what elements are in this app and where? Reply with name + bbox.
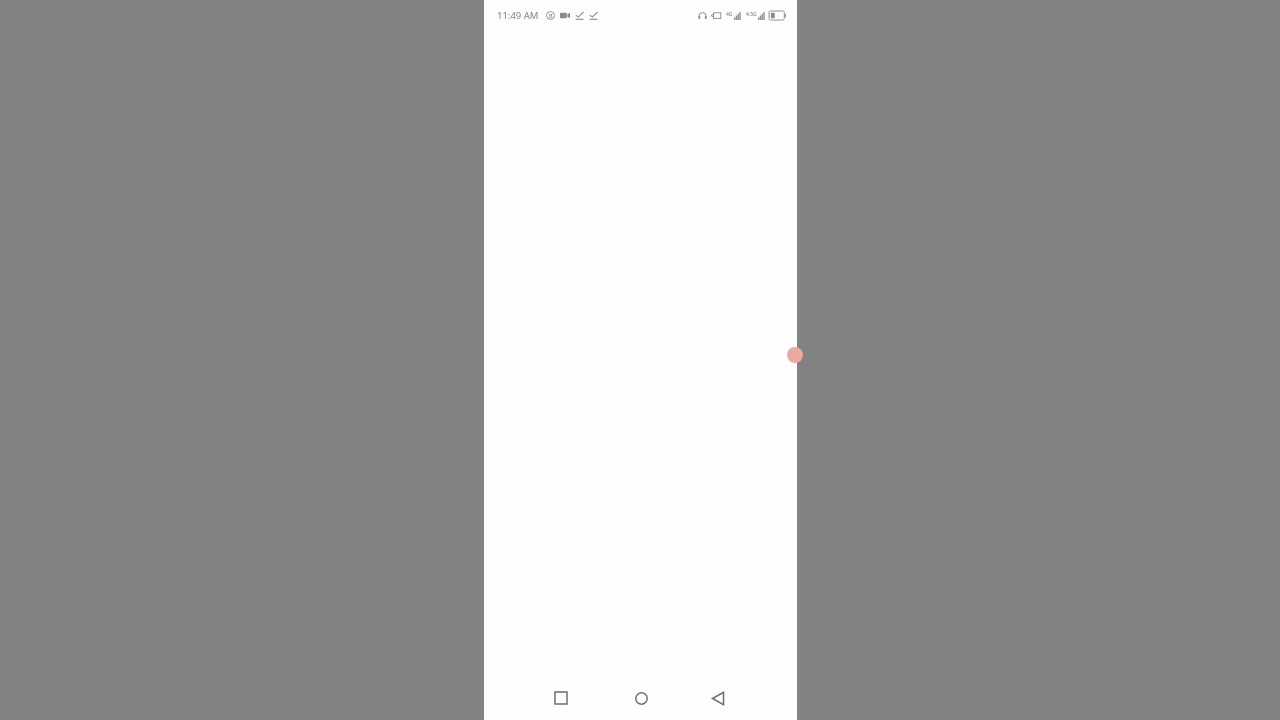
staticText: 4G — [726, 11, 733, 18]
button[interactable]: Recent apps — [541, 678, 581, 718]
button[interactable]: Chat bubble — [787, 347, 803, 363]
button[interactable]: Back — [698, 678, 738, 718]
staticText: B — [549, 12, 553, 19]
staticText: 11:49 AM — [497, 9, 539, 22]
staticText: 4.5G — [746, 11, 757, 18]
button[interactable]: Home — [621, 678, 661, 718]
